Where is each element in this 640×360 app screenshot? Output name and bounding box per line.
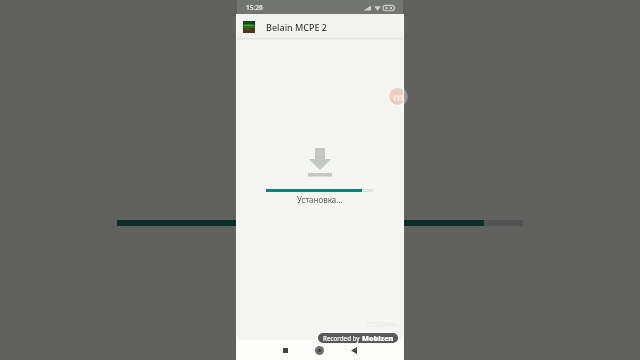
staticText: m <box>393 89 404 104</box>
button[interactable]: Recent apps <box>274 340 297 360</box>
button[interactable]: Mobizen recorder <box>387 86 408 107</box>
button[interactable]: Back <box>342 340 365 360</box>
staticText: Recorded by <box>323 334 362 342</box>
button[interactable]: ОТМЕНА <box>367 320 397 330</box>
staticText: Mobizen <box>362 333 394 343</box>
staticText: Belain MCPE 2 <box>266 21 328 33</box>
button[interactable]: Home <box>307 340 331 360</box>
staticText: 15:26 <box>246 3 263 12</box>
staticText: Установка... <box>297 194 343 205</box>
